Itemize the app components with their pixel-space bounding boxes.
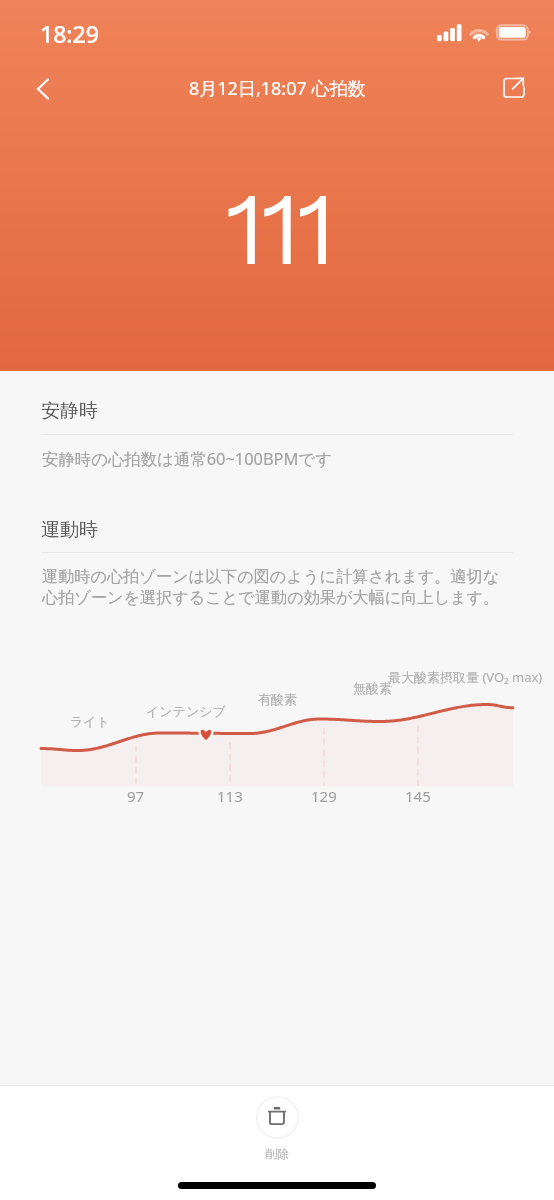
staticText: ライト [70, 713, 110, 729]
button[interactable]: Share [492, 66, 536, 110]
staticText: 8月12日,18:07 心拍数 [189, 76, 366, 101]
staticText: 有酸素 [258, 691, 297, 707]
staticText: 129 [311, 786, 337, 806]
staticText: 安静時の心拍数は通常60~100BPMです [42, 447, 332, 469]
staticText: 運動時 [41, 518, 98, 542]
staticText: 運動時の心拍ゾーンは以下の図のように計算されます。適切な 心拍ゾーンを選択するこ… [42, 566, 500, 608]
staticText: 安静時 [41, 399, 98, 423]
staticText: 145 [405, 786, 431, 806]
button[interactable]: Back [19, 65, 67, 113]
staticText: インテンシブ [146, 703, 226, 719]
staticText: 最大酸素摂取量 (VO₂ max) [388, 668, 543, 686]
staticText: 18:29 [40, 18, 99, 49]
staticText: 97 [127, 786, 145, 806]
staticText: 削除 [265, 1146, 289, 1161]
staticText: 無酸素 [353, 680, 392, 696]
staticText: 111 [226, 173, 335, 288]
staticText: 113 [217, 786, 243, 806]
button[interactable]: 削除 [237, 1092, 317, 1164]
